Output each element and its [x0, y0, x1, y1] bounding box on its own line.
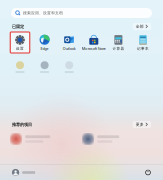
button[interactable]: Recommended item	[80, 131, 150, 147]
button[interactable]: App	[8, 55, 32, 76]
button[interactable]: 更多	[133, 121, 151, 128]
button[interactable]: 计算器	[106, 32, 131, 53]
button[interactable]: Recommended item	[8, 131, 78, 147]
button[interactable]: 设置	[8, 32, 32, 53]
button[interactable]: Power	[142, 166, 154, 178]
staticText: 已固定	[12, 24, 24, 29]
staticText: 推荐的项目	[12, 122, 32, 127]
staticText: Edge	[41, 46, 49, 51]
button[interactable]: User account	[9, 167, 38, 178]
staticText: 搜索应用、设置和文档	[23, 11, 63, 15]
button[interactable]: Microsoft Store	[81, 32, 106, 53]
staticText: 记事本	[137, 46, 149, 51]
button[interactable]: App	[57, 55, 81, 76]
staticText: Outlook	[63, 46, 76, 51]
button[interactable]: 记事本	[131, 32, 155, 53]
button[interactable]: 全部	[133, 23, 151, 30]
staticText: 全部	[136, 24, 144, 29]
staticText: 计算器	[112, 46, 124, 51]
button[interactable]: Edge	[32, 32, 57, 53]
staticText: 更多	[136, 122, 144, 127]
staticText: 设置	[16, 46, 24, 51]
staticText: Microsoft Store	[82, 46, 106, 51]
button[interactable]: App	[32, 55, 57, 76]
button[interactable]: Outlook	[57, 32, 81, 53]
button[interactable]: 搜索应用、设置和文档	[11, 8, 152, 18]
